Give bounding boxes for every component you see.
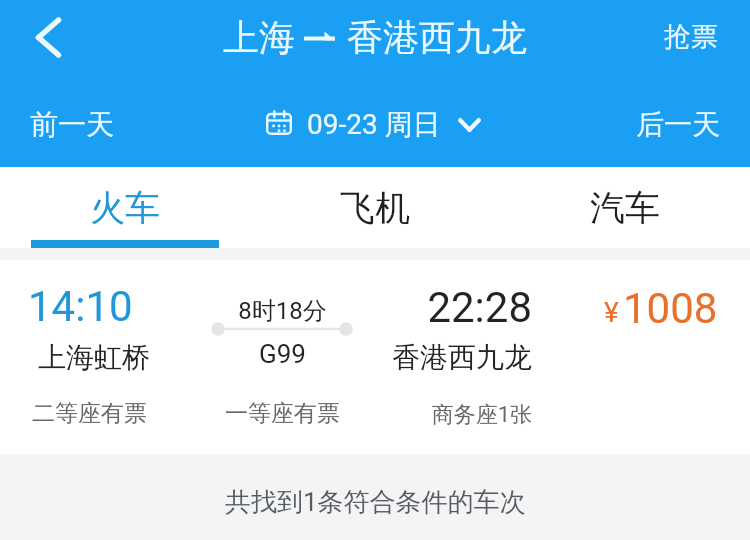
staticText: 8时18分 [238, 296, 327, 326]
staticText: 上海 [223, 15, 295, 60]
staticText: 火车 [90, 186, 160, 230]
button[interactable]: 汽车 [500, 167, 750, 248]
button[interactable]: 09-23 周日 [259, 96, 491, 153]
staticText: 香港西九龙 [392, 340, 532, 375]
staticText: 后一天 [636, 107, 720, 142]
button[interactable]: 后一天 [606, 96, 750, 153]
button[interactable]: 抢票 [634, 0, 750, 72]
staticText: 飞机 [340, 186, 410, 230]
staticText: 09-23 周日 [307, 107, 441, 142]
staticText: 22:28 [427, 283, 532, 332]
staticText: 香港西九龙 [347, 15, 527, 60]
staticText: 前一天 [30, 107, 114, 142]
staticText: 共找到1条符合条件的车次 [225, 486, 526, 519]
button[interactable]: Back [0, 0, 96, 80]
button[interactable]: 火车 [0, 167, 250, 248]
staticText: 抢票 [664, 20, 718, 54]
staticText: G99 [259, 339, 306, 369]
staticText: 一等座有票 [225, 399, 340, 428]
staticText: 商务座1张 [431, 401, 532, 429]
staticText: 二等座有票 [32, 399, 147, 428]
button[interactable]: 前一天 [0, 96, 144, 153]
staticText: 上海虹桥 [38, 340, 150, 375]
staticText: 1008 [623, 284, 718, 333]
staticText: 14:10 [28, 282, 133, 331]
staticText: 汽车 [590, 186, 660, 230]
button[interactable]: 14:10 [0, 260, 750, 454]
staticText: ¥ [604, 296, 619, 329]
button[interactable]: 飞机 [250, 167, 500, 248]
